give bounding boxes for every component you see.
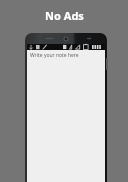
staticText: Write your note here [30,52,79,59]
staticText: No Ads [45,8,84,23]
button[interactable]: Write your note here [27,50,105,182]
other: Power [106,58,108,70]
